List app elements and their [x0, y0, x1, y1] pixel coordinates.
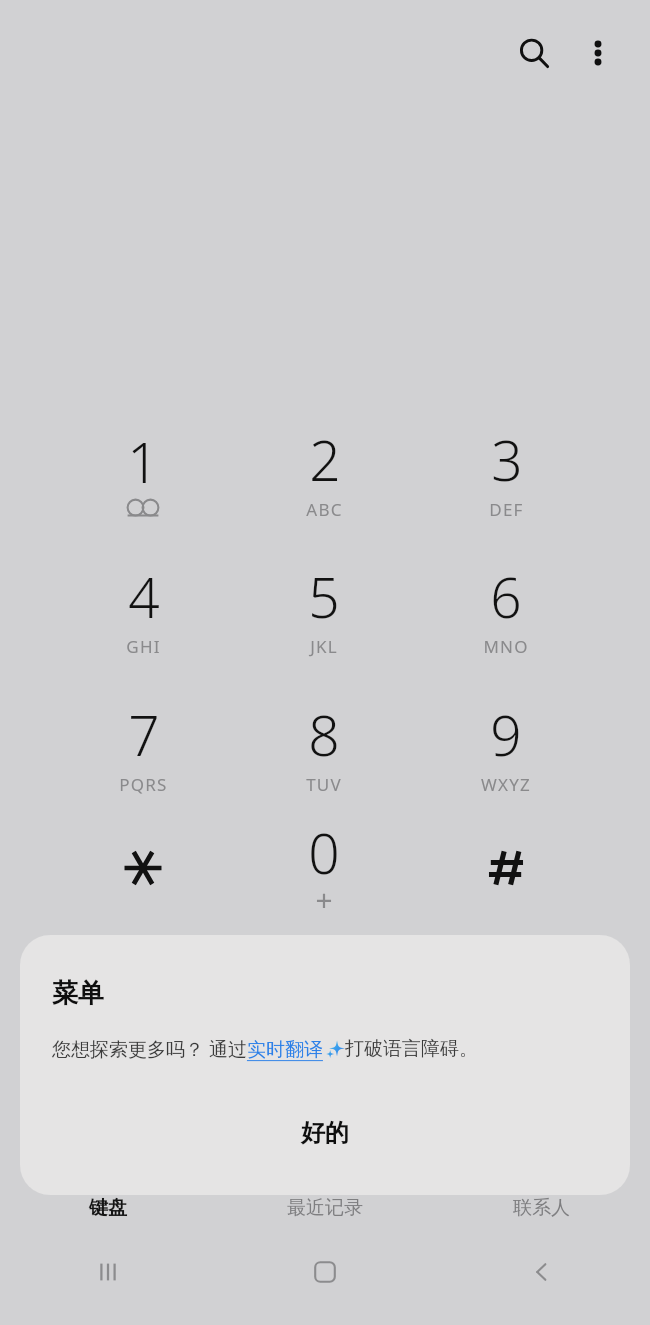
button[interactable]: Dial 2 [249, 415, 399, 535]
staticText: 1 [127, 424, 159, 499]
button[interactable]: 好的 [20, 1096, 630, 1170]
button[interactable]: Dial 1 [68, 415, 218, 535]
button[interactable]: More options [570, 25, 626, 81]
staticText: WXYZ [481, 773, 531, 796]
staticText: 8 [308, 697, 340, 772]
staticText: GHI [126, 635, 161, 658]
button[interactable]: Recents [0, 1232, 216, 1312]
staticText: 键盘 [89, 1196, 127, 1220]
staticText: 您想探索更多吗？ 通过实时翻译 [52, 1036, 323, 1062]
button[interactable]: 最近记录 [216, 1185, 433, 1231]
staticText: 菜单 [52, 977, 104, 1010]
staticText: 5 [308, 559, 340, 634]
button[interactable]: Dial 3 [431, 415, 581, 535]
button[interactable]: Dial 5 [249, 552, 399, 672]
staticText: 联系人 [513, 1196, 570, 1220]
staticText: ABC [306, 498, 343, 521]
staticText: JKL [310, 635, 338, 658]
button[interactable]: Dial 8 [249, 690, 399, 810]
button[interactable]: Dial 7 [68, 690, 218, 810]
staticText: 3 [491, 422, 523, 497]
staticText: 最近记录 [287, 1196, 363, 1220]
staticText: 2 [309, 422, 341, 497]
staticText: TUV [306, 773, 342, 796]
staticText: 9 [490, 697, 522, 772]
button[interactable]: Search [506, 25, 562, 81]
button[interactable]: Dial 9 [431, 690, 581, 810]
staticText: 好的 [301, 1118, 349, 1148]
button[interactable]: 联系人 [433, 1185, 650, 1231]
button[interactable]: Dial * [68, 808, 218, 928]
button[interactable]: 键盘 [0, 1185, 216, 1231]
button[interactable]: Dial # [431, 808, 581, 928]
button[interactable]: Dial 0 [249, 808, 399, 928]
staticText: 4 [128, 559, 160, 634]
button[interactable]: Dial 4 [68, 552, 218, 672]
staticText: 打破语言障碍。 [345, 1037, 478, 1061]
button[interactable]: Back [433, 1232, 650, 1312]
staticText: MNO [483, 635, 529, 658]
staticText: PQRS [119, 773, 168, 796]
staticText: 0 [308, 815, 340, 890]
button[interactable]: Dial 6 [431, 552, 581, 672]
button[interactable]: Home [216, 1232, 433, 1312]
staticText: 7 [128, 697, 160, 772]
staticText: DEF [489, 498, 524, 521]
staticText: 6 [490, 559, 522, 634]
